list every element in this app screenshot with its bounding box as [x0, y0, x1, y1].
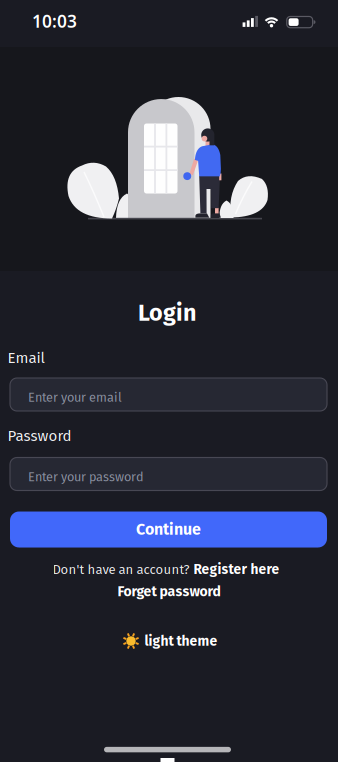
- staticText: 10:03: [32, 9, 77, 32]
- button[interactable]: Forget password: [117, 583, 220, 600]
- button[interactable]: Enter your password: [10, 457, 327, 490]
- button[interactable]: light theme: [122, 632, 217, 649]
- staticText: Email: [7, 349, 44, 367]
- staticText: Register here: [193, 561, 279, 578]
- staticText: Continue: [136, 520, 201, 539]
- staticText: Forget password: [117, 583, 220, 600]
- staticText: Login: [138, 299, 196, 327]
- button[interactable]: Don't have an account?: [52, 561, 279, 578]
- staticText: Enter your email: [28, 390, 122, 405]
- button[interactable]: Enter your email: [10, 378, 327, 411]
- staticText: Don't have an account?: [52, 562, 189, 577]
- staticText: light theme: [144, 633, 217, 649]
- staticText: Password: [7, 427, 71, 445]
- button[interactable]: Continue: [10, 511, 327, 547]
- staticText: Enter your password: [28, 469, 144, 485]
